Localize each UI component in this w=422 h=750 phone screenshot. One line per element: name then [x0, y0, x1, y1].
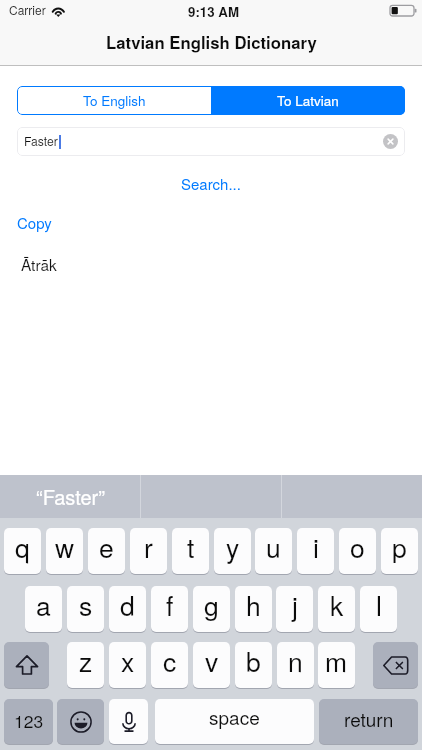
staticText: u: [266, 528, 281, 566]
button[interactable]: y: [214, 528, 251, 574]
staticText: f: [166, 586, 174, 624]
button[interactable]: 123: [4, 699, 53, 744]
button[interactable]: To English: [17, 86, 211, 115]
button[interactable]: h: [235, 586, 272, 632]
staticText: t: [187, 528, 195, 566]
button[interactable]: t: [172, 528, 209, 574]
staticText: y: [226, 528, 240, 566]
staticText: j: [292, 586, 298, 624]
button[interactable]: q: [4, 528, 41, 574]
staticText: space: [209, 703, 260, 730]
button[interactable]: i: [297, 528, 334, 574]
staticText: e: [99, 528, 114, 566]
button[interactable]: return: [319, 699, 418, 744]
staticText: a: [36, 586, 51, 624]
button[interactable]: m: [318, 642, 355, 688]
button[interactable]: k: [318, 586, 355, 632]
staticText: To English: [83, 91, 146, 110]
button[interactable]: n: [277, 642, 314, 688]
button[interactable]: b: [235, 642, 272, 688]
staticText: 123: [14, 708, 44, 733]
button[interactable]: Copy: [17, 212, 52, 233]
button[interactable]: g: [193, 586, 230, 632]
button[interactable]: a: [25, 586, 62, 632]
staticText: z: [79, 642, 93, 680]
button[interactable]: w: [46, 528, 83, 574]
button[interactable]: To Latvian: [211, 86, 405, 115]
staticText: g: [204, 586, 219, 624]
staticText: c: [163, 642, 177, 680]
staticText: k: [330, 586, 344, 624]
staticText: “Faster”: [36, 482, 105, 511]
button[interactable]: f: [151, 586, 188, 632]
staticText: Search...: [181, 173, 241, 194]
button[interactable]: “Faster”: [0, 475, 140, 518]
button[interactable]: Emoji: [57, 699, 104, 744]
button[interactable]: Faster: [17, 127, 405, 156]
staticText: n: [288, 642, 303, 680]
button[interactable]: l: [360, 586, 397, 632]
button[interactable]: Clear text: [383, 134, 398, 149]
staticText: p: [392, 528, 407, 566]
button[interactable]: z: [67, 642, 104, 688]
staticText: Faster: [24, 132, 58, 149]
staticText: 9:13 AM: [188, 2, 239, 21]
staticText: b: [246, 642, 261, 680]
button[interactable]: p: [381, 528, 418, 574]
button[interactable]: r: [130, 528, 167, 574]
button[interactable]: Search...: [0, 172, 422, 194]
button[interactable]: Dictation: [109, 699, 148, 744]
button[interactable]: d: [109, 586, 146, 632]
staticText: i: [313, 528, 319, 566]
staticText: To Latvian: [277, 91, 339, 110]
staticText: h: [246, 586, 261, 624]
staticText: l: [376, 586, 382, 624]
staticText: Latvian English Dictionary: [106, 30, 317, 54]
staticText: d: [120, 586, 135, 624]
staticText: m: [325, 642, 348, 680]
button[interactable]: o: [339, 528, 376, 574]
staticText: v: [205, 642, 219, 680]
staticText: Ātrāk: [21, 253, 57, 275]
staticText: Copy: [17, 212, 52, 233]
staticText: r: [144, 528, 153, 566]
button[interactable]: Shift: [4, 642, 49, 688]
staticText: o: [350, 528, 365, 566]
button[interactable]: u: [255, 528, 292, 574]
button[interactable]: x: [109, 642, 146, 688]
button[interactable]: space: [155, 699, 314, 744]
staticText: s: [79, 586, 93, 624]
button[interactable]: e: [88, 528, 125, 574]
button[interactable]: c: [151, 642, 188, 688]
staticText: w: [55, 528, 75, 566]
button[interactable]: j: [276, 586, 313, 632]
staticText: q: [15, 528, 30, 566]
staticText: return: [344, 705, 394, 732]
staticText: Carrier: [9, 1, 46, 18]
button[interactable]: Backspace: [373, 642, 418, 688]
staticText: x: [121, 642, 135, 680]
button[interactable]: v: [193, 642, 230, 688]
button[interactable]: s: [67, 586, 104, 632]
